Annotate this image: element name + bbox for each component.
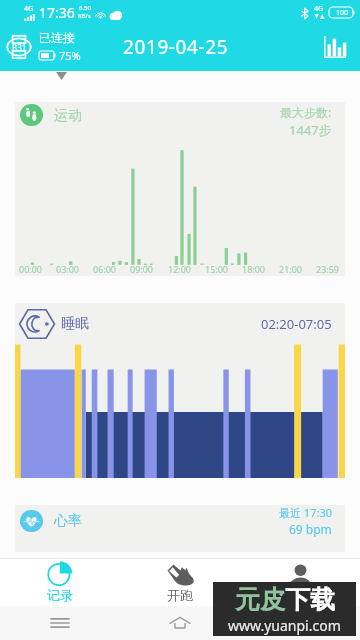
staticText: 睡眠 <box>61 315 89 333</box>
staticText: www.yuanpi.com <box>228 616 341 635</box>
button[interactable]: Home <box>120 606 240 640</box>
button[interactable]: Back <box>240 606 360 640</box>
staticText: 69 bpm <box>289 521 332 537</box>
staticText: 15:00 <box>205 263 229 275</box>
button[interactable]: 记录 <box>0 559 120 606</box>
staticText: 6.50 <box>79 4 91 12</box>
staticText: 00:00 <box>19 263 43 275</box>
staticText: 100 <box>336 8 349 18</box>
staticText: 下载 <box>285 584 335 615</box>
staticText: 03:00 <box>56 263 80 275</box>
staticText: 最大步数: <box>280 104 332 120</box>
staticText: 心率 <box>54 512 82 530</box>
staticText: 23:59 <box>316 263 340 275</box>
staticText: 2019-04-25 <box>123 34 229 60</box>
staticText: 记录 <box>47 587 73 603</box>
staticText: 17:36 <box>39 3 75 22</box>
staticText: 我的 <box>287 587 313 603</box>
staticText: 02:20-07:05 <box>261 315 332 333</box>
staticText: 运动 <box>54 107 82 125</box>
staticText: 元皮 <box>235 584 285 615</box>
staticText: 06:00 <box>93 263 117 275</box>
staticText: 已连接 <box>39 30 75 45</box>
staticText: 最近 17:30 <box>279 505 332 520</box>
button[interactable]: 心率 <box>15 505 345 552</box>
staticText: 09:00 <box>130 263 154 275</box>
button[interactable]: 睡眠 <box>15 303 345 478</box>
button[interactable]: B31 <box>5 30 81 63</box>
staticText: 4G <box>314 4 324 14</box>
button[interactable]: Statistics <box>324 36 346 58</box>
staticText: 1447步 <box>289 121 332 139</box>
button[interactable]: 运动 <box>15 102 345 276</box>
staticText: 75% <box>59 48 81 63</box>
button[interactable]: 开跑 <box>120 559 240 606</box>
staticText: 12:00 <box>168 263 192 275</box>
staticText: KB/s <box>78 12 91 20</box>
staticText: 开跑 <box>167 587 193 603</box>
staticText: B31 <box>12 42 27 53</box>
staticText: 21:00 <box>279 263 303 275</box>
staticText: 4G <box>24 4 34 14</box>
staticText: 18:00 <box>242 263 266 275</box>
button[interactable]: Recents <box>0 606 120 640</box>
button[interactable]: 我的 <box>240 559 360 606</box>
